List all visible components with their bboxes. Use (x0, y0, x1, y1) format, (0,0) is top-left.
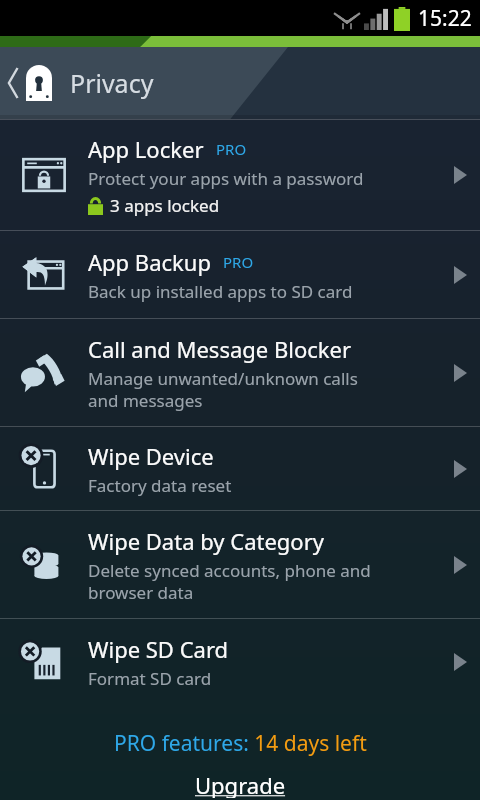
button[interactable]: Upgrade (185, 768, 296, 800)
button[interactable]: Back to Privacy (0, 47, 480, 119)
staticText: PRO (223, 252, 254, 272)
staticText: Manage unwanted/unknown calls and messag… (88, 367, 358, 412)
staticText: Call and Message Blocker (88, 334, 352, 364)
staticText: Upgrade (195, 770, 286, 798)
staticText: PRO (216, 139, 247, 159)
button[interactable]: Call and Message Blocker (0, 319, 480, 426)
button[interactable]: App Locker (0, 120, 480, 230)
button[interactable]: App Backup (0, 231, 480, 318)
staticText: Protect your apps with a password (88, 167, 364, 190)
staticText: Wipe SD Card (88, 634, 229, 664)
staticText: App Backup (88, 247, 211, 277)
staticText: Wipe Data by Category (88, 526, 324, 556)
staticText: 15:22 (418, 4, 472, 33)
staticText: Privacy (70, 66, 154, 100)
button[interactable]: Wipe Device (0, 427, 480, 510)
button[interactable]: Wipe Data by Category (0, 511, 480, 618)
staticText: 3 apps locked (110, 194, 220, 217)
staticText: App Locker (88, 134, 204, 164)
staticText: Delete synced accounts, phone and browse… (88, 559, 371, 604)
button[interactable]: PRO features: 14 days left (114, 729, 367, 758)
staticText: Wipe Device (88, 441, 214, 471)
staticText: Factory data reset (88, 474, 232, 497)
button[interactable]: Wipe SD Card (0, 619, 480, 704)
staticText: Format SD card (88, 667, 212, 690)
staticText: PRO features: 14 days left (114, 729, 367, 758)
staticText: Back up installed apps to SD card (88, 280, 353, 303)
